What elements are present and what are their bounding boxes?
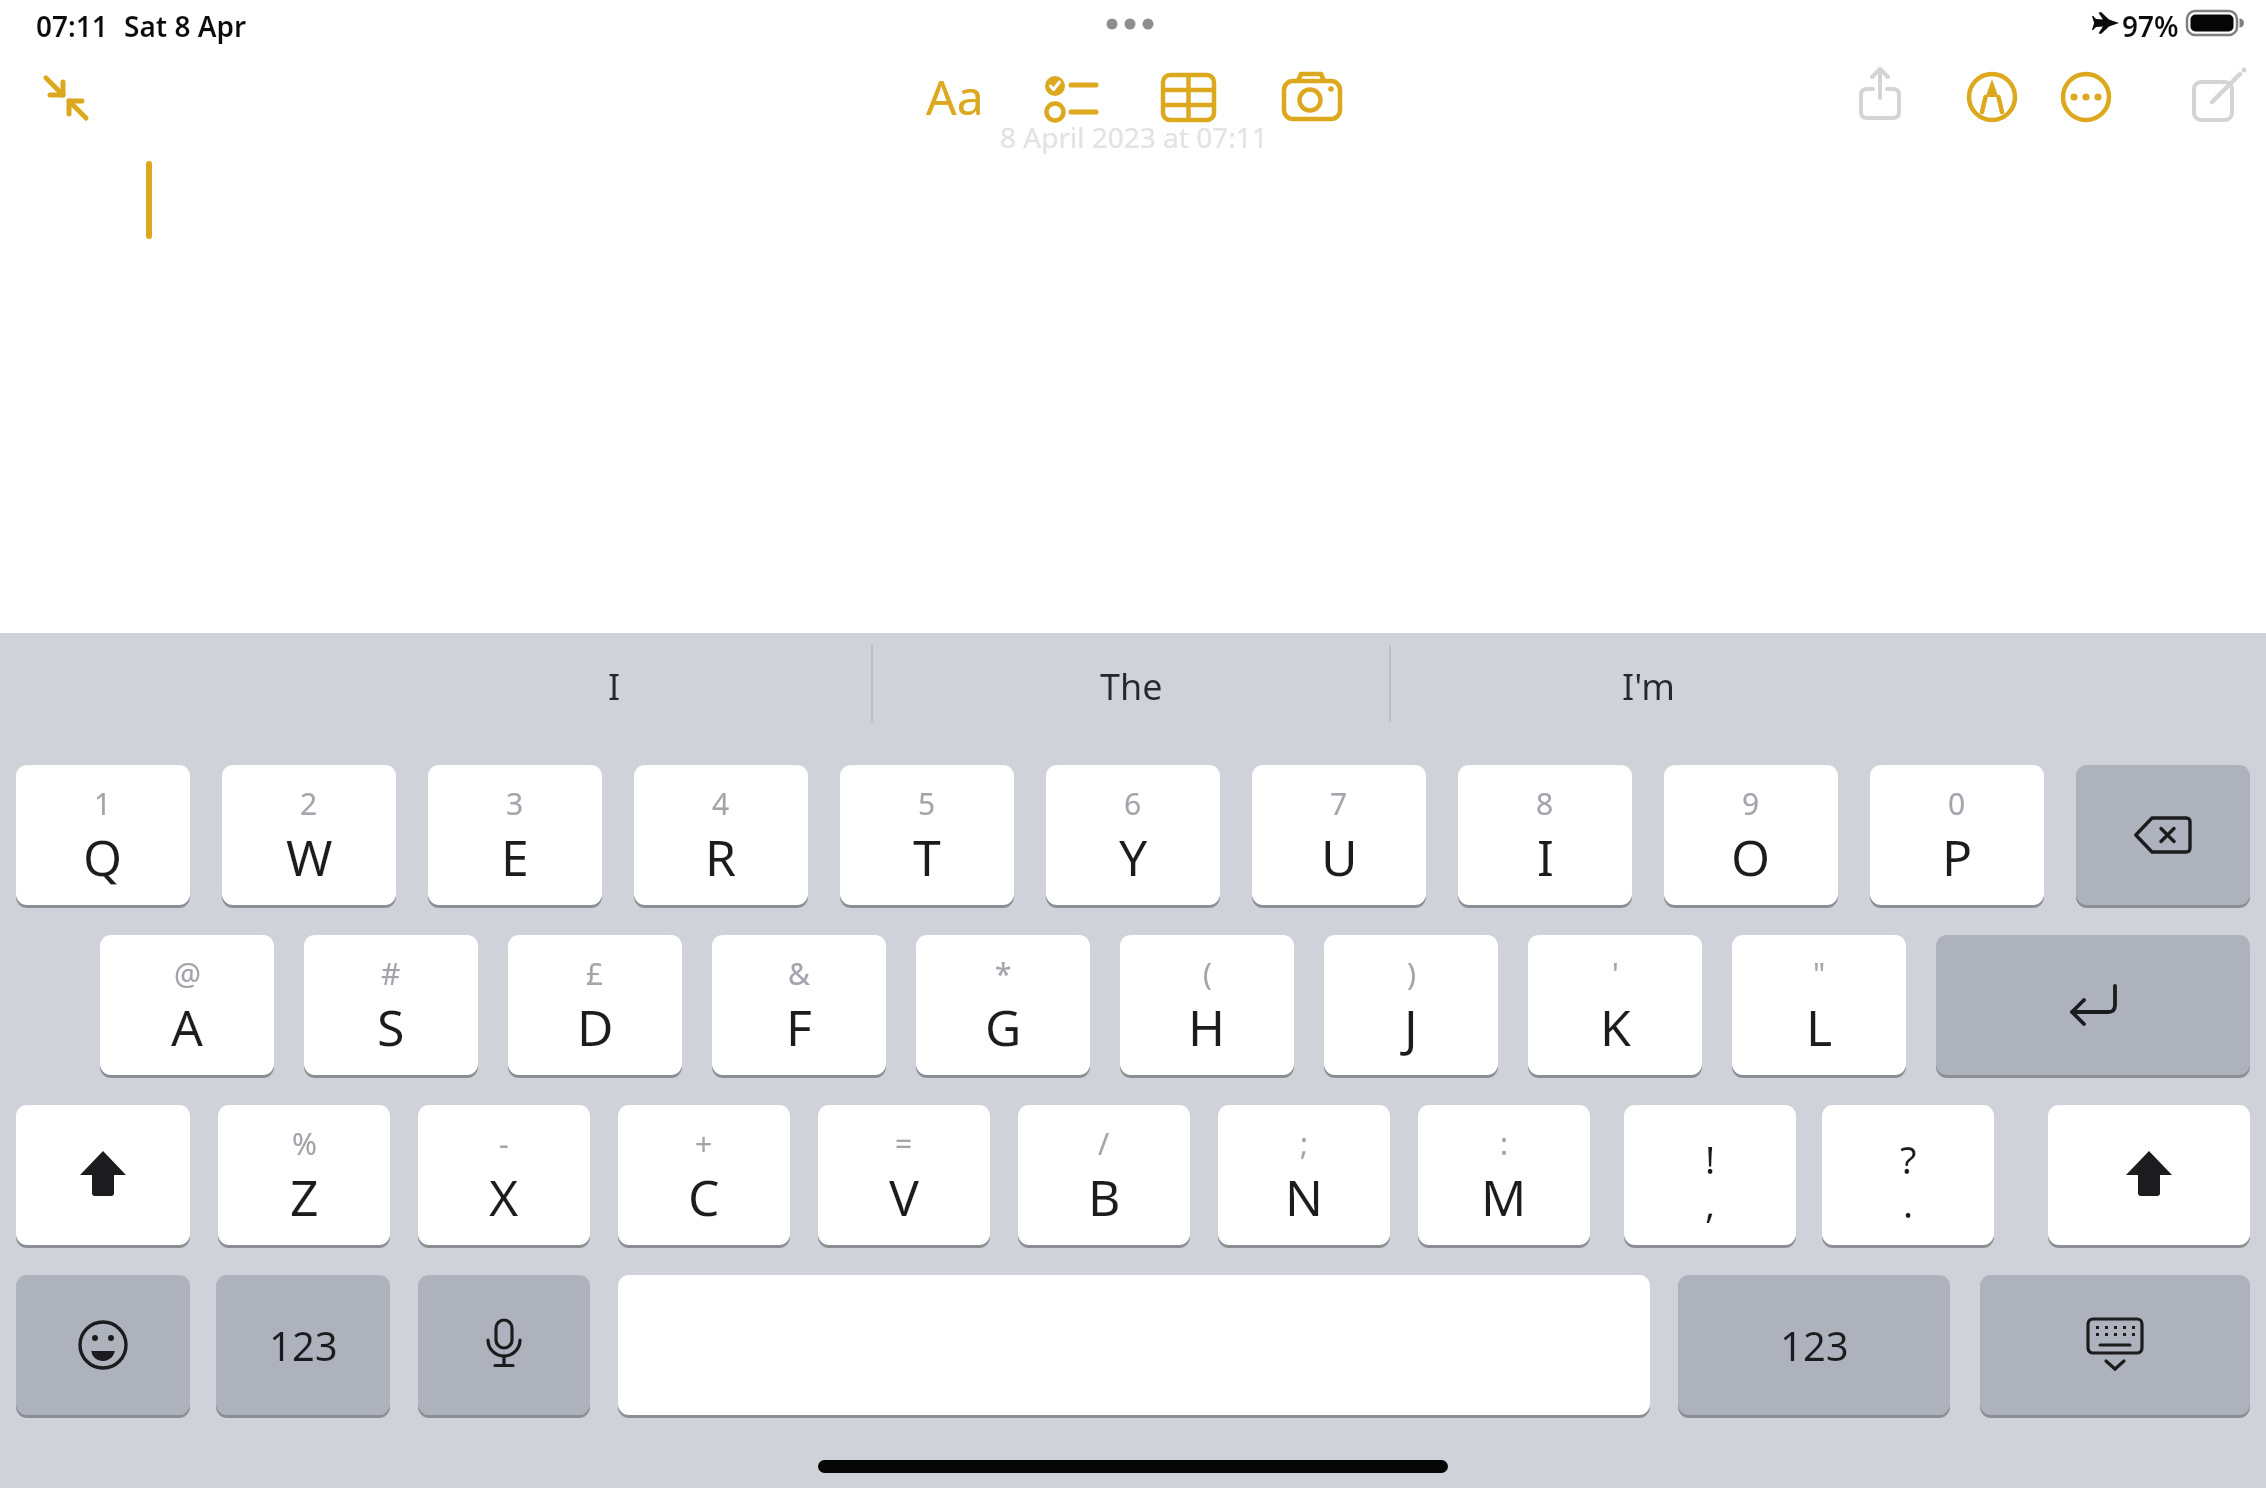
staticText: ( xyxy=(1203,953,1212,994)
staticText: 1 xyxy=(94,783,112,824)
staticText: 4 xyxy=(712,783,730,824)
staticText: R xyxy=(705,823,737,891)
button[interactable]: 4 xyxy=(634,765,808,905)
button[interactable]: 9 xyxy=(1664,765,1838,905)
staticText: " xyxy=(1813,953,1826,994)
button[interactable]: I'm xyxy=(1390,648,1907,724)
button[interactable]: : xyxy=(1418,1105,1590,1245)
staticText: 97% xyxy=(2122,7,2179,45)
button[interactable] xyxy=(1980,1275,2250,1415)
staticText: ) xyxy=(1407,953,1416,994)
button[interactable]: ) xyxy=(1324,935,1498,1075)
staticText: 07:11 xyxy=(36,7,108,45)
staticText: / xyxy=(1098,1123,1110,1164)
staticText: 0 xyxy=(1948,783,1966,824)
button[interactable] xyxy=(1936,935,2250,1075)
staticText: N xyxy=(1285,1163,1323,1231)
staticText: O xyxy=(1731,823,1771,891)
button[interactable]: 8 xyxy=(1458,765,1632,905)
button[interactable]: I xyxy=(357,648,872,724)
staticText: 3 xyxy=(506,783,524,824)
button[interactable] xyxy=(40,70,96,126)
button[interactable]: 1 xyxy=(16,765,190,905)
staticText: I xyxy=(1537,823,1554,891)
button[interactable]: - xyxy=(418,1105,590,1245)
staticText: Q xyxy=(83,823,123,891)
button[interactable] xyxy=(2048,1105,2250,1245)
button[interactable]: & xyxy=(712,935,886,1075)
staticText: Z xyxy=(290,1163,319,1231)
button[interactable] xyxy=(2190,64,2250,126)
button[interactable] xyxy=(1161,71,1219,125)
staticText: P xyxy=(1942,823,1973,891)
staticText: F xyxy=(786,993,812,1061)
button[interactable]: @ xyxy=(100,935,274,1075)
button[interactable]: ' xyxy=(1528,935,1702,1075)
staticText: A xyxy=(171,993,203,1061)
staticText: E xyxy=(501,823,529,891)
button[interactable]: Aa xyxy=(917,64,993,128)
staticText: @ xyxy=(174,953,201,994)
staticText: H xyxy=(1188,993,1226,1061)
button[interactable]: ? xyxy=(1822,1105,1994,1245)
staticText: * xyxy=(995,953,1012,994)
button[interactable]: 0 xyxy=(1870,765,2044,905)
button[interactable]: = xyxy=(818,1105,990,1245)
staticText: , xyxy=(1705,1177,1716,1229)
button[interactable]: 7 xyxy=(1252,765,1426,905)
button[interactable] xyxy=(1282,68,1344,126)
staticText: I'm xyxy=(1622,662,1675,711)
button[interactable]: 123 xyxy=(1678,1275,1950,1415)
staticText: ! xyxy=(1705,1133,1716,1185)
button[interactable]: / xyxy=(1018,1105,1190,1245)
staticText: 2 xyxy=(300,783,318,824)
button[interactable]: £ xyxy=(508,935,682,1075)
button[interactable]: 3 xyxy=(428,765,602,905)
button[interactable]: * xyxy=(916,935,1090,1075)
button[interactable] xyxy=(418,1275,590,1415)
button[interactable]: 5 xyxy=(840,765,1014,905)
staticText: Y xyxy=(1119,823,1148,891)
button[interactable]: 6 xyxy=(1046,765,1220,905)
staticText: W xyxy=(286,823,333,891)
staticText: V xyxy=(889,1163,919,1231)
staticText: £ xyxy=(586,953,604,994)
staticText: 8 April 2023 at 07:11 xyxy=(1000,118,1268,154)
staticText: 9 xyxy=(1742,783,1760,824)
button[interactable]: The xyxy=(872,648,1390,724)
button[interactable] xyxy=(16,1105,190,1245)
button[interactable] xyxy=(2060,71,2112,123)
button[interactable]: ! xyxy=(1624,1105,1796,1245)
button[interactable]: % xyxy=(218,1105,390,1245)
staticText: 6 xyxy=(1124,783,1142,824)
button[interactable] xyxy=(1856,62,1906,128)
staticText: ' xyxy=(1612,953,1619,994)
staticText: : xyxy=(1500,1123,1509,1164)
button[interactable] xyxy=(16,1275,190,1415)
button[interactable]: 2 xyxy=(222,765,396,905)
button[interactable]: " xyxy=(1732,935,1906,1075)
staticText: 5 xyxy=(918,783,936,824)
staticText: J xyxy=(1404,993,1418,1061)
staticText: I xyxy=(608,662,621,711)
button[interactable] xyxy=(1966,71,2018,123)
staticText: + xyxy=(695,1123,713,1164)
staticText: M xyxy=(1481,1163,1527,1231)
staticText: = xyxy=(895,1123,913,1164)
button[interactable]: # xyxy=(304,935,478,1075)
button[interactable]: + xyxy=(618,1105,790,1245)
staticText: U xyxy=(1321,823,1358,891)
staticText: & xyxy=(788,953,810,994)
button[interactable]: ( xyxy=(1120,935,1294,1075)
staticText: 123 xyxy=(269,1318,338,1372)
button[interactable]: ; xyxy=(1218,1105,1390,1245)
staticText: C xyxy=(688,1163,720,1231)
button[interactable] xyxy=(2076,765,2250,905)
button[interactable]: 123 xyxy=(216,1275,390,1415)
staticText: 7 xyxy=(1330,783,1348,824)
staticText: # xyxy=(381,953,401,994)
staticText: T xyxy=(913,823,941,891)
staticText: S xyxy=(377,993,405,1061)
button[interactable] xyxy=(1038,68,1102,128)
